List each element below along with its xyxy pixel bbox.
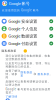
staticText: 和 [32, 72, 37, 76]
button[interactable]: Google 个人信息 [0, 25, 56, 32]
staticText: Google 付款设置 [8, 41, 37, 46]
staticText: Google 数据设置 [8, 33, 37, 39]
staticText: Google 安全设置 [8, 19, 37, 24]
staticText: Google 帐号 [9, 1, 30, 6]
staticText: 您随时可以查看和调整这些设置，以便让您的 [5, 80, 50, 86]
staticText: 我们会说明我们收集的数据、收集这些数据的原因， [5, 54, 50, 61]
button[interactable]: Google 付款设置 [0, 40, 56, 47]
staticText: 如需了解详情，请参阅 [5, 69, 20, 79]
staticText: 了解详情 [5, 95, 17, 98]
button[interactable]: 了解详情 [5, 95, 17, 98]
staticText: 服务条款 [37, 72, 49, 76]
staticText: Google 帐号更符合您的实际使用需求。 [5, 87, 50, 94]
staticText: 隐私权政策 [2, 49, 17, 53]
staticText: 以及您可以如何更新、管理、导出和删除自己的信息。 [5, 62, 50, 68]
button[interactable]: 隐私权政策 [20, 71, 32, 77]
staticText: Google 个人信息 [8, 26, 37, 31]
staticText: 隐私权政策 [20, 71, 32, 77]
button[interactable]: Google 数据设置 [0, 32, 56, 40]
button[interactable]: Google 安全设置 [0, 18, 56, 25]
button[interactable]: 服务条款 [37, 72, 49, 76]
staticText: 。 [49, 72, 52, 76]
staticText: 欢迎使用您的 Google 帐号 [2, 8, 39, 12]
